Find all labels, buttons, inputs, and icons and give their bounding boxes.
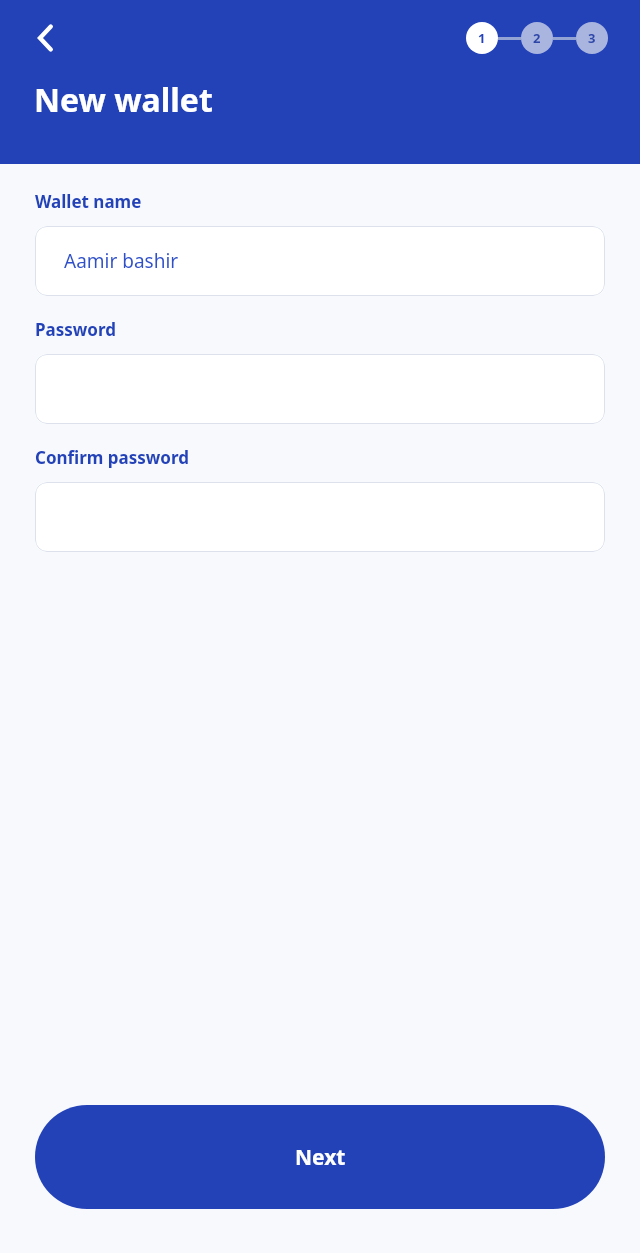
staticText: Confirm password [35,446,190,469]
staticText: 3 [588,29,596,47]
staticText: 2 [533,29,541,47]
button[interactable] [35,354,605,424]
button[interactable]: Back [20,12,72,64]
staticText: Next [295,1143,346,1172]
staticText: New wallet [34,78,213,122]
button[interactable]: 2 [521,22,553,54]
staticText: Aamir bashir [64,248,179,274]
staticText: 1 [478,29,486,47]
button[interactable]: Next [35,1105,605,1209]
button[interactable]: 3 [576,22,608,54]
staticText: Password [35,318,116,341]
staticText: Wallet name [35,190,142,213]
button[interactable]: Aamir bashir [35,226,605,296]
button[interactable]: 1 [466,22,498,54]
button[interactable] [35,482,605,552]
